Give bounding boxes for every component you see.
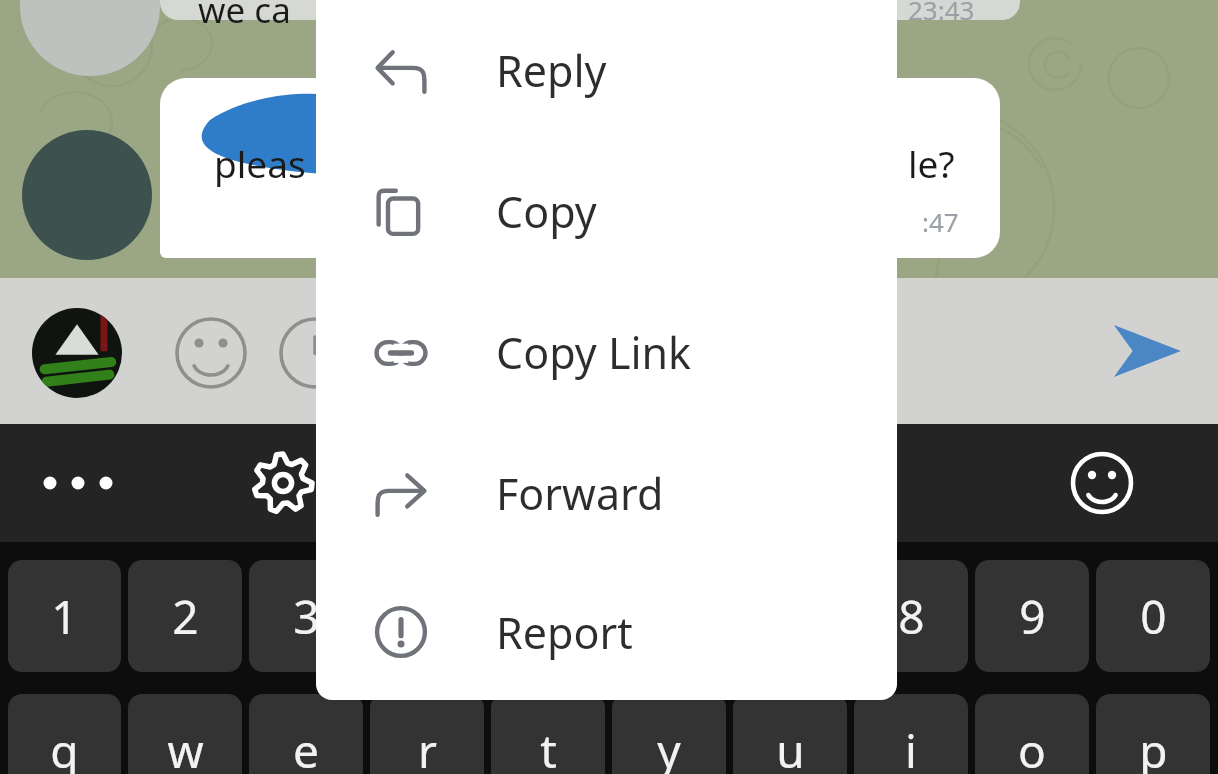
staticText: 3 — [293, 585, 320, 648]
staticText: e — [293, 719, 319, 774]
button[interactable]: Forward — [316, 423, 897, 564]
button[interactable]: Reply — [316, 0, 897, 141]
button[interactable]: Profile photo — [32, 308, 122, 398]
button[interactable]: 1 — [8, 560, 121, 672]
staticText: 4 — [414, 585, 441, 648]
staticText: 9 — [1019, 585, 1046, 648]
staticText: le? — [908, 138, 955, 188]
button[interactable]: e — [249, 694, 363, 774]
staticText: t — [540, 719, 557, 774]
button[interactable]: 8 — [854, 560, 968, 672]
staticText: Copy Link — [496, 323, 692, 382]
button[interactable]: Emoji keyboard — [1070, 451, 1134, 515]
staticText: 0 — [1140, 585, 1167, 648]
button[interactable]: t — [491, 694, 605, 774]
staticText: u — [776, 719, 805, 774]
staticText: Report — [496, 603, 633, 662]
button[interactable]: y — [612, 694, 726, 774]
staticText: Forward — [496, 464, 664, 523]
button[interactable]: Copy Link — [316, 282, 897, 423]
button[interactable]: o — [975, 694, 1089, 774]
staticText: o — [1018, 719, 1046, 774]
button[interactable]: Send — [1100, 304, 1194, 398]
button[interactable]: q — [8, 694, 121, 774]
staticText: 5 — [535, 585, 562, 648]
staticText: Reply — [496, 41, 607, 100]
staticText: 1 — [51, 585, 78, 648]
button[interactable]: 2 — [128, 560, 242, 672]
staticText: 8 — [898, 585, 925, 648]
staticText: 23:43 — [908, 0, 975, 27]
button[interactable]: Copy — [316, 141, 897, 282]
button[interactable]: r — [370, 694, 484, 774]
staticText: :47 — [922, 204, 959, 239]
button[interactable]: 4 — [370, 560, 484, 672]
staticText: pleas — [214, 138, 306, 188]
staticText: y — [657, 719, 681, 774]
button[interactable]: u — [733, 694, 847, 774]
button[interactable]: 0 — [1096, 560, 1210, 672]
staticText: we ca — [198, 0, 291, 34]
staticText: 2 — [172, 585, 199, 648]
button[interactable]: i — [854, 694, 968, 774]
button[interactable]: Schedule message — [278, 316, 352, 390]
staticText: r — [418, 719, 437, 774]
staticText: Copy — [496, 182, 597, 241]
staticText: w — [167, 719, 204, 774]
staticText: p — [1139, 719, 1168, 774]
button[interactable]: More options — [38, 458, 114, 508]
button[interactable]: w — [128, 694, 242, 774]
button[interactable]: Settings — [250, 450, 316, 516]
button[interactable]: 3 — [249, 560, 363, 672]
button[interactable]: 9 — [975, 560, 1089, 672]
staticText: i — [905, 719, 917, 774]
button[interactable]: 5 — [491, 560, 605, 672]
button[interactable]: 6 — [612, 560, 726, 672]
button[interactable]: p — [1096, 694, 1210, 774]
staticText: q — [50, 719, 79, 774]
button[interactable]: Emoji — [174, 316, 248, 390]
button[interactable]: Report — [316, 564, 897, 700]
